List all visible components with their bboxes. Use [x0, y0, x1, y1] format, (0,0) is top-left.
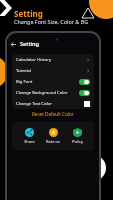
button[interactable]: Toggle: [79, 79, 90, 85]
button[interactable]: Change Text Color: [12, 98, 94, 109]
button[interactable]: Calculator History: [12, 54, 94, 65]
staticText: Rate us: [46, 139, 60, 144]
button[interactable]: Policy: [72, 128, 83, 144]
button[interactable]: Toggle: [79, 90, 90, 96]
staticText: Policy: [72, 139, 83, 144]
staticText: Big Font: [16, 79, 79, 85]
staticText: Change Text Color: [16, 101, 84, 107]
button[interactable]: Back: [7, 38, 20, 51]
staticText: Setting: [20, 40, 40, 48]
staticText: Change Font Size, Color & BG: [14, 18, 89, 25]
button[interactable]: Share: [24, 128, 35, 144]
staticText: Calculator History: [16, 57, 86, 63]
button[interactable]: Reset Default Color: [32, 111, 74, 117]
staticText: Share: [24, 139, 35, 144]
staticText: Tutorial: [16, 68, 86, 74]
button[interactable]: Tutorial: [12, 65, 94, 76]
staticText: Setting: [14, 8, 43, 19]
staticText: Change Background Color: [16, 90, 79, 96]
button[interactable]: Rate us: [46, 128, 60, 144]
button[interactable]: Big Font: [12, 76, 94, 87]
button[interactable]: Change Background Color: [12, 87, 94, 98]
